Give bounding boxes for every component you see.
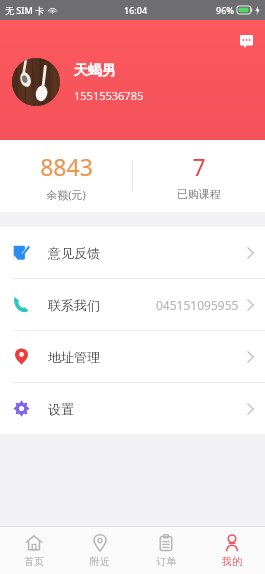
button[interactable]: 设置 [0,383,265,434]
button[interactable]: 我的 [199,527,265,574]
staticText: 8843 [40,151,93,182]
button[interactable]: 订单 [133,527,199,574]
button[interactable]: Avatar [12,58,60,106]
staticText: 15515536785 [74,88,144,103]
button[interactable]: 7 [133,140,265,212]
staticText: 意见反馈 [48,245,100,261]
staticText: 16:04 [124,4,148,16]
staticText: 天蝎男 [74,62,116,80]
button[interactable]: 意见反馈 [0,227,265,278]
button[interactable]: 附近 [67,527,133,574]
staticText: 045151095955 [156,297,239,313]
button[interactable]: 首页 [0,527,67,574]
staticText: 地址管理 [48,349,100,365]
staticText: 余额(元) [46,187,86,202]
button[interactable]: Avatar [12,58,144,106]
staticText: 96% [216,4,234,16]
staticText: 设置 [48,401,74,417]
staticText: 首页 [24,555,44,568]
button[interactable]: 8843 [0,140,132,212]
staticText: 我的 [222,555,242,568]
button[interactable]: 联系我们 [0,279,265,330]
staticText: 联系我们 [48,297,100,313]
button[interactable]: 地址管理 [0,331,265,382]
button[interactable]: Messages [234,29,258,53]
staticText: 已购课程 [177,187,221,201]
staticText: 7 [192,151,206,182]
staticText: 订单 [156,555,176,568]
staticText: 无 SIM 卡 [5,4,45,16]
staticText: 附近 [90,555,110,568]
